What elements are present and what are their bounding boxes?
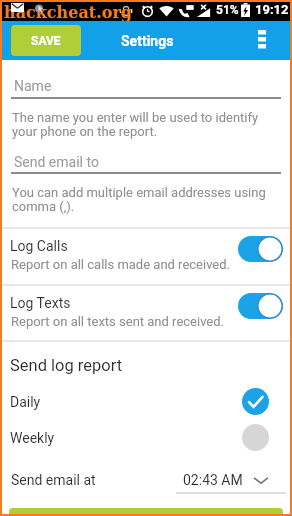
staticText: Report on all calls made and received. <box>11 257 231 272</box>
staticText: Send email at <box>11 472 96 488</box>
button[interactable]: Save <box>9 508 283 514</box>
staticText: Log Texts <box>10 295 71 311</box>
staticText: Send log report <box>10 356 123 375</box>
button[interactable]: Weekly <box>2 422 290 456</box>
staticText: 51% <box>216 3 239 17</box>
staticText: Report on all texts sent and received. <box>11 314 225 329</box>
button[interactable]: Log Calls <box>2 229 290 284</box>
staticText: The name you enter will be used to ident… <box>12 110 259 139</box>
staticText: Name <box>14 78 52 94</box>
staticText: hackcheat.org <box>4 3 132 22</box>
staticText: Weekly <box>10 430 55 446</box>
staticText: You can add multiple email addresses usi… <box>12 185 266 214</box>
staticText: SAVE <box>31 34 61 48</box>
staticText: 02:43 AM <box>183 472 243 488</box>
staticText: 19:12 <box>255 2 289 17</box>
staticText: Log Calls <box>10 238 68 254</box>
button[interactable]: More options <box>246 21 282 60</box>
staticText: Send email to <box>14 154 99 170</box>
staticText: Daily <box>10 394 41 410</box>
button[interactable]: 02:43 AM <box>174 464 288 498</box>
button[interactable]: SAVE <box>11 25 81 56</box>
button[interactable]: Log Texts <box>2 286 290 341</box>
button[interactable]: Daily <box>2 386 290 420</box>
staticText: Settings <box>121 33 174 49</box>
